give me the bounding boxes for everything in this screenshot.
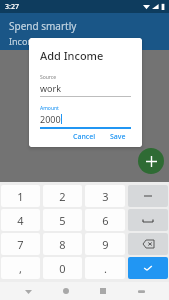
staticText: . [104,261,107,276]
staticText: Amount [40,105,59,112]
button[interactable]: Minus [128,185,168,207]
button[interactable]: Home [57,282,75,300]
button[interactable]: , [1,257,40,279]
staticText: 3:27 [5,2,19,12]
button[interactable]: 6 [85,209,125,231]
button[interactable]: 1 [1,185,40,207]
button[interactable]: Space [128,209,168,231]
staticText: Source [40,74,57,81]
button[interactable]: Backspace [128,233,168,255]
staticText: 6 [102,213,109,228]
button[interactable]: work [40,82,131,97]
staticText: Save [110,132,126,142]
button[interactable]: 0 [43,257,82,279]
staticText: 0 [59,261,66,276]
staticText: 9 [102,237,109,252]
button[interactable]: Recents [94,282,112,300]
staticText: 2000 [40,113,61,125]
staticText: 4 [17,213,24,228]
staticText: Cancel [73,132,96,142]
button[interactable]: Cancel [68,129,101,145]
button[interactable]: Switch keyboard [132,282,150,300]
button[interactable]: . [85,257,125,279]
button[interactable]: 7 [1,233,40,255]
button[interactable]: Add [138,148,164,174]
button[interactable]: 5 [43,209,82,231]
staticText: 8 [59,237,66,252]
staticText: 3 [102,189,109,204]
button[interactable]: Save [105,129,131,145]
staticText: Income [9,35,41,47]
staticText: , [19,261,22,276]
button[interactable]: 8 [43,233,82,255]
staticText: Spend smartly [9,19,77,33]
staticText: 5 [59,213,66,228]
staticText: 2 [59,189,66,204]
staticText: work [40,82,62,94]
button[interactable]: 2 [43,185,82,207]
button[interactable]: Hide keyboard [19,282,37,300]
staticText: 7 [17,237,24,252]
button[interactable]: 3 [85,185,125,207]
staticText: 1 [17,189,24,204]
button[interactable]: Enter [128,257,168,279]
staticText: Add Income [40,48,104,63]
button[interactable]: 2000 [40,113,131,129]
button[interactable]: 9 [85,233,125,255]
button[interactable]: 4 [1,209,40,231]
